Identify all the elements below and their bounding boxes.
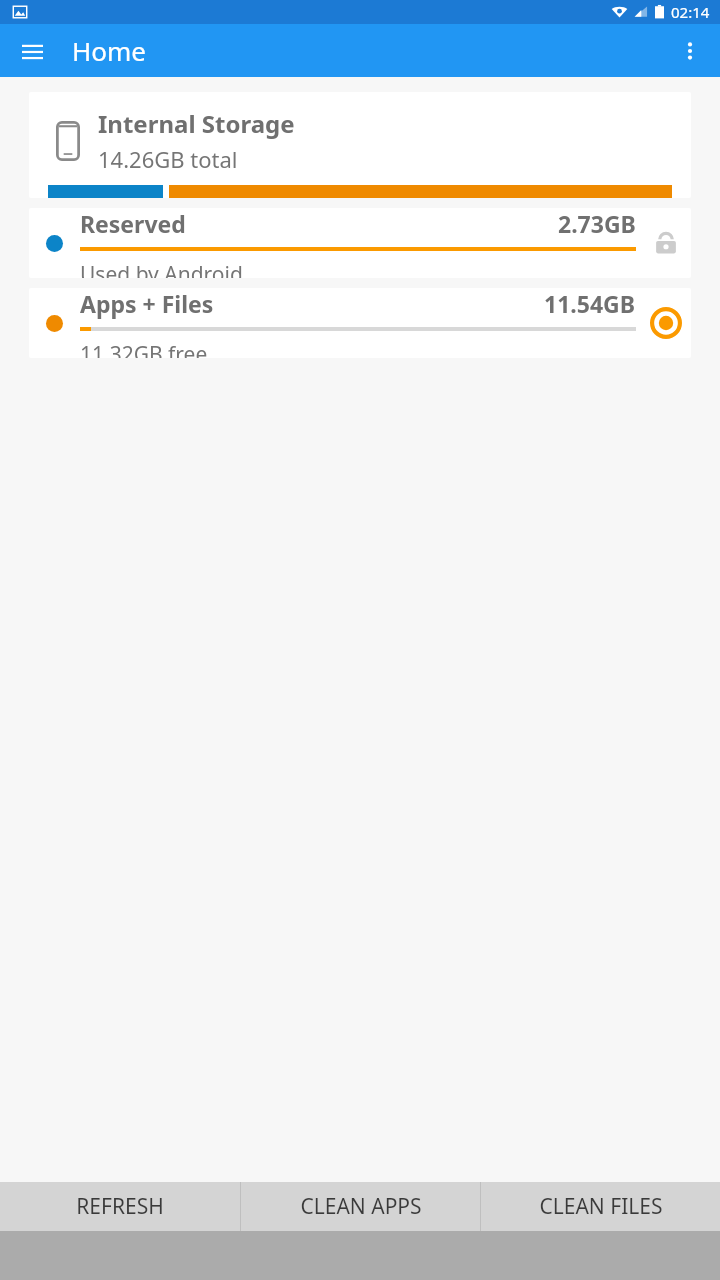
button[interactable]: Open navigation menu xyxy=(8,27,56,75)
staticText: 02:14 xyxy=(671,2,710,22)
staticText: 11.32GB free xyxy=(80,340,208,358)
staticText: Internal Storage xyxy=(98,107,295,140)
staticText: Reserved xyxy=(80,208,186,239)
button[interactable]: Internal Storage xyxy=(29,92,691,198)
button[interactable]: Select xyxy=(640,288,691,358)
staticText: CLEAN FILES xyxy=(539,1192,663,1221)
staticText: 14.26GB total xyxy=(98,144,238,174)
staticText: 2.73GB xyxy=(558,208,636,239)
staticText: CLEAN APPS xyxy=(300,1192,422,1221)
button[interactable]: REFRESH xyxy=(0,1182,240,1231)
button[interactable]: Apps + Files xyxy=(29,288,691,358)
button[interactable]: More options xyxy=(666,27,714,75)
staticText: Used by Android xyxy=(80,260,243,278)
staticText: Apps + Files xyxy=(80,288,214,319)
button[interactable]: Locked xyxy=(640,208,691,278)
button[interactable]: CLEAN FILES xyxy=(481,1182,720,1231)
staticText: Home xyxy=(72,33,146,68)
staticText: 11.54GB xyxy=(544,288,636,319)
button[interactable]: Reserved xyxy=(29,208,691,278)
staticText: REFRESH xyxy=(76,1192,164,1221)
button[interactable]: CLEAN APPS xyxy=(241,1182,480,1231)
